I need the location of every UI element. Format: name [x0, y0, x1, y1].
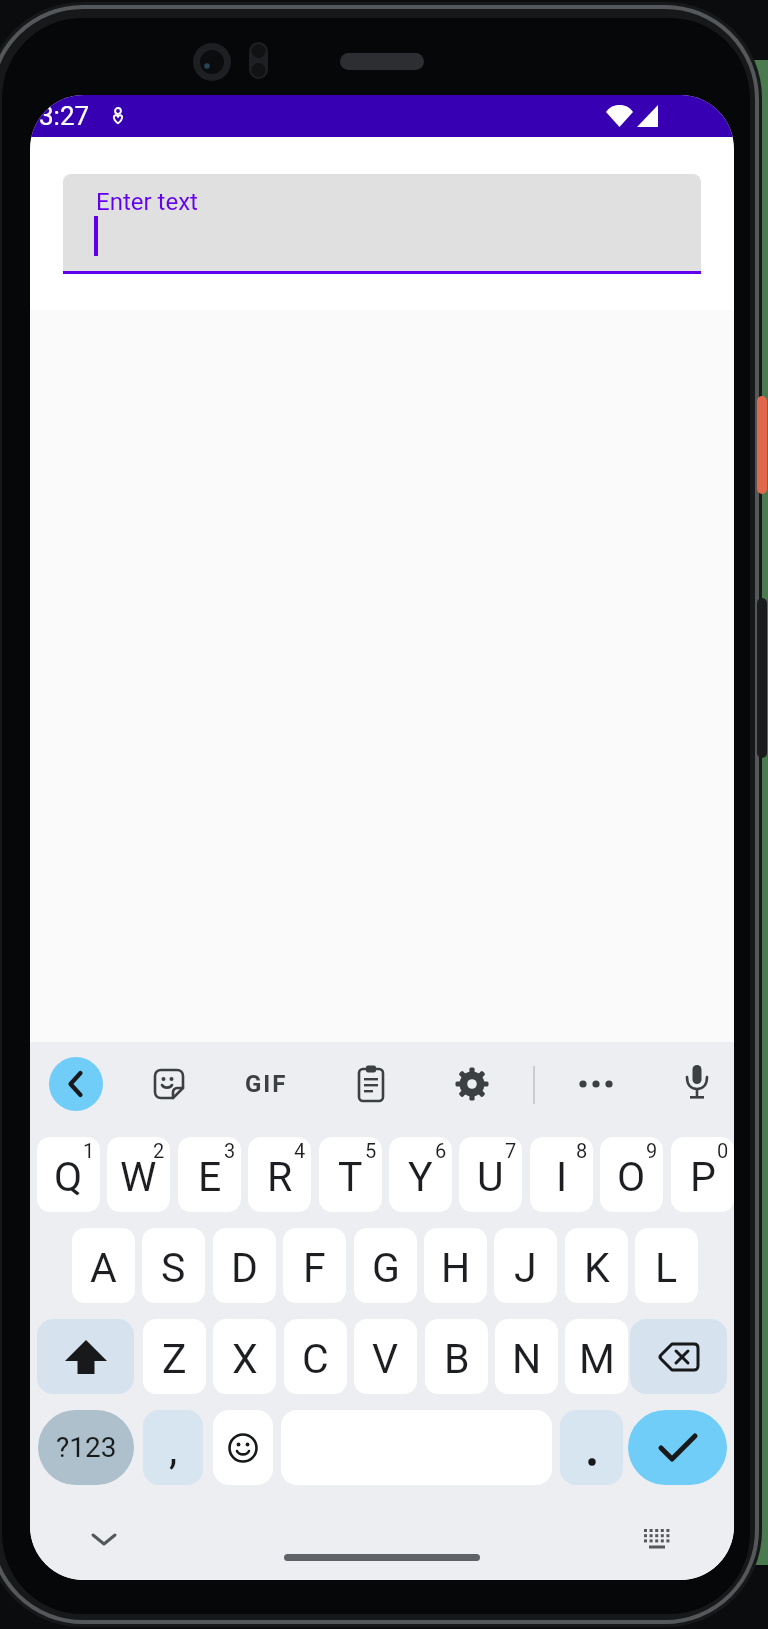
button[interactable]: M — [565, 1319, 628, 1394]
button[interactable]: Y — [389, 1137, 452, 1212]
button[interactable] — [628, 1410, 727, 1485]
staticText: ?123 — [56, 1431, 117, 1464]
button[interactable] — [454, 1066, 490, 1102]
button[interactable] — [213, 1410, 273, 1485]
button[interactable] — [679, 1064, 715, 1104]
button[interactable] — [560, 1410, 623, 1485]
button[interactable] — [630, 1319, 727, 1394]
staticText: 7 — [505, 1139, 517, 1162]
button[interactable]: F — [283, 1228, 346, 1303]
staticText: C — [302, 1335, 329, 1383]
button[interactable]: J — [494, 1228, 557, 1303]
button[interactable]: B — [425, 1319, 488, 1394]
button[interactable]: Enter text — [63, 174, 701, 274]
staticText: Z — [162, 1335, 187, 1383]
staticText: 5 — [365, 1139, 377, 1162]
staticText: F — [303, 1244, 326, 1292]
staticText: W — [120, 1153, 157, 1201]
staticText: 2 — [153, 1139, 165, 1162]
button[interactable]: X — [213, 1319, 276, 1394]
button[interactable]: N — [495, 1319, 558, 1394]
button[interactable]: Z — [143, 1319, 206, 1394]
staticText: H — [441, 1244, 471, 1292]
staticText: M — [579, 1335, 615, 1383]
staticText: 8 — [576, 1139, 588, 1162]
button[interactable]: GIF — [236, 1068, 296, 1100]
staticText: 3:27 — [39, 101, 90, 131]
button[interactable]: P — [671, 1137, 734, 1212]
button[interactable]: R — [248, 1137, 311, 1212]
staticText: U — [477, 1153, 504, 1201]
staticText: X — [232, 1335, 258, 1383]
button[interactable]: U — [459, 1137, 522, 1212]
staticText: 3 — [224, 1139, 236, 1162]
staticText: B — [444, 1335, 470, 1383]
button[interactable]: S — [142, 1228, 205, 1303]
staticText: I — [556, 1153, 568, 1201]
staticText: 4 — [294, 1139, 306, 1162]
button[interactable]: L — [635, 1228, 698, 1303]
button[interactable]: I — [530, 1137, 593, 1212]
staticText: R — [267, 1153, 293, 1201]
staticText: E — [198, 1153, 222, 1201]
staticText: Enter text — [96, 188, 198, 216]
button[interactable] — [37, 1319, 134, 1394]
button[interactable]: V — [354, 1319, 417, 1394]
button[interactable]: Q — [37, 1137, 100, 1212]
staticText: N — [512, 1335, 542, 1383]
button[interactable] — [642, 1528, 672, 1552]
staticText: , — [169, 1425, 178, 1474]
staticText: 6 — [435, 1139, 447, 1162]
button[interactable]: D — [213, 1228, 276, 1303]
staticText: O — [617, 1153, 646, 1201]
button[interactable] — [353, 1064, 389, 1104]
staticText: T — [338, 1153, 363, 1201]
staticText: S — [161, 1244, 186, 1292]
staticText: GIF — [245, 1070, 288, 1098]
button[interactable]: H — [424, 1228, 487, 1303]
button[interactable] — [49, 1057, 103, 1111]
staticText: 0 — [717, 1139, 729, 1162]
button[interactable]: G — [354, 1228, 417, 1303]
button[interactable]: W — [107, 1137, 170, 1212]
staticText: G — [372, 1244, 400, 1292]
staticText: L — [655, 1244, 678, 1292]
button[interactable]: ?123 — [38, 1410, 134, 1485]
staticText: V — [372, 1335, 399, 1383]
staticText: 1 — [83, 1139, 95, 1162]
button[interactable]: C — [284, 1319, 347, 1394]
staticText: Y — [408, 1153, 433, 1201]
button[interactable]: T — [319, 1137, 382, 1212]
button[interactable]: K — [565, 1228, 628, 1303]
staticText: J — [514, 1244, 537, 1292]
button[interactable] — [578, 1078, 614, 1090]
button[interactable]: , — [143, 1410, 203, 1485]
staticText: K — [584, 1244, 610, 1292]
staticText: Q — [54, 1153, 83, 1201]
button[interactable] — [90, 1532, 118, 1548]
staticText: A — [90, 1244, 117, 1292]
button[interactable]: A — [72, 1228, 135, 1303]
staticText: D — [231, 1244, 258, 1292]
button[interactable] — [151, 1066, 187, 1102]
staticText: P — [690, 1153, 716, 1201]
staticText: 9 — [646, 1139, 658, 1162]
button[interactable]: E — [178, 1137, 241, 1212]
button[interactable]: O — [600, 1137, 663, 1212]
